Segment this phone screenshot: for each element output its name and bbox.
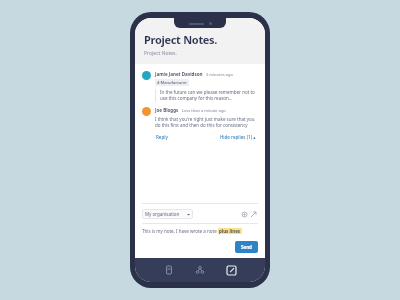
button[interactable]: Send [235, 241, 258, 253]
staticText: plus lines [219, 228, 241, 234]
staticText: Send [241, 244, 252, 250]
staticText: # Manufacturer [157, 80, 187, 85]
button[interactable]: Network [191, 261, 209, 279]
staticText: 3 minutes ago [206, 72, 233, 77]
staticText: This is my note, I have wrote a note [142, 228, 218, 234]
staticText: Joe Bloggs [155, 107, 179, 113]
button[interactable]: Hide replies (1) ▴ [219, 133, 257, 141]
staticText: Reply [156, 134, 168, 140]
staticText: Jamie Janet Davidson [155, 71, 203, 77]
staticText: My organisation [145, 211, 180, 217]
staticText: Project Notes. [144, 50, 177, 57]
button[interactable]: Devices [160, 261, 178, 279]
button[interactable]: Reply [155, 133, 169, 141]
button[interactable]: Expand editor [249, 210, 258, 219]
staticText: Less than a minute ago [182, 108, 226, 113]
staticText: Hide replies (1) ▴ [220, 134, 256, 140]
staticText: I think that you're right just make sure… [155, 116, 257, 128]
button[interactable]: Add attachment [240, 210, 249, 219]
button[interactable]: My organisation [142, 209, 193, 219]
staticText: In the future can we please remember not… [160, 89, 257, 101]
button[interactable]: Notes [222, 261, 240, 279]
staticText: Project Notes. [144, 32, 218, 47]
